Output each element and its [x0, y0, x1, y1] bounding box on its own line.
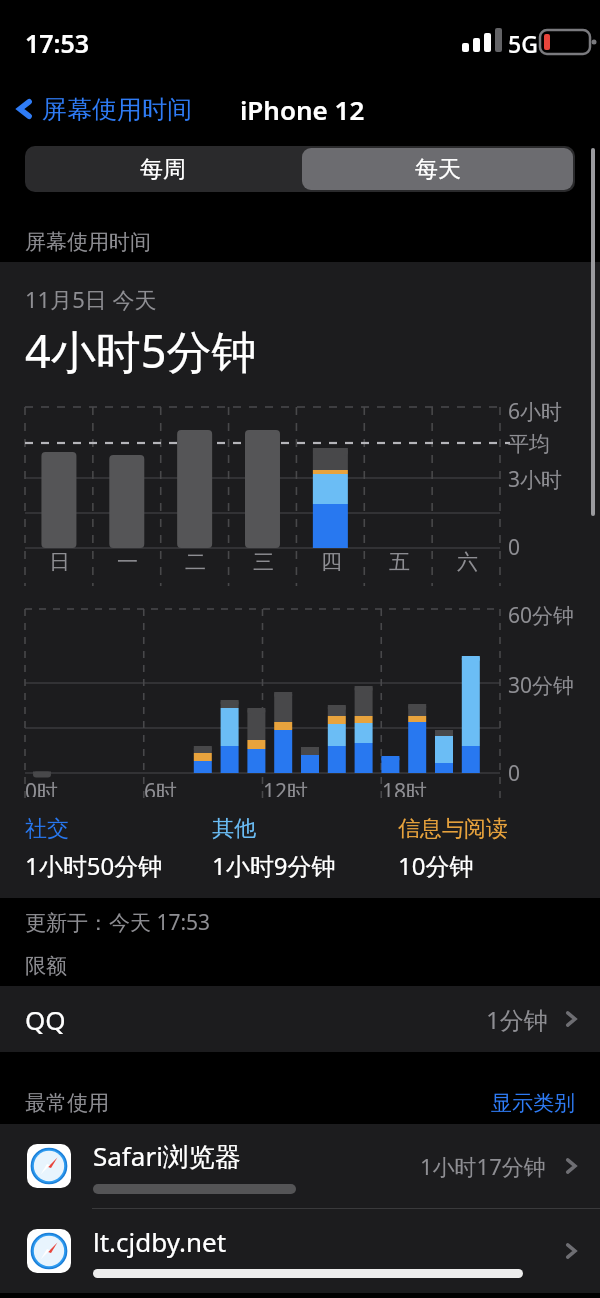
button[interactable]: 信息与阅读: [398, 815, 575, 882]
staticText: 1小时9分钟: [212, 849, 336, 882]
staticText: 更新于：今天 17:53: [25, 908, 211, 937]
button[interactable]: 显示类别: [491, 1090, 575, 1116]
button[interactable]: 每周: [25, 146, 300, 192]
staticText: 11月5日 今天: [25, 284, 157, 314]
staticText: 五: [389, 549, 410, 573]
staticText: 6时: [144, 777, 178, 797]
staticText: 6小时: [508, 397, 563, 426]
other: Safari: [27, 1144, 71, 1188]
button[interactable]: 屏幕使用时间: [0, 78, 200, 140]
staticText: 日: [49, 549, 70, 573]
other: Safari: [27, 1229, 71, 1273]
staticText: 4小时5分钟: [25, 320, 257, 381]
button[interactable]: 每天: [302, 148, 573, 190]
staticText: 1小时50分钟: [25, 849, 163, 882]
button[interactable]: Safari: [0, 1209, 600, 1293]
staticText: QQ: [25, 1002, 66, 1037]
staticText: 10分钟: [398, 849, 474, 882]
other: More: [560, 1240, 582, 1262]
staticText: 三: [253, 549, 274, 573]
staticText: 17:53: [25, 26, 90, 60]
staticText: 平均: [508, 431, 550, 457]
staticText: 其他: [212, 815, 256, 843]
staticText: 3小时: [508, 465, 563, 494]
staticText: lt.cjdby.net: [93, 1224, 227, 1259]
staticText: 30分钟: [508, 671, 575, 700]
staticText: 1分钟: [486, 1003, 548, 1036]
button[interactable]: Safari: [0, 1124, 600, 1208]
staticText: 每周: [140, 155, 186, 184]
staticText: 四: [321, 549, 342, 573]
staticText: 0时: [25, 777, 59, 797]
staticText: 18时: [382, 777, 428, 797]
staticText: 屏幕使用时间: [42, 94, 192, 125]
button[interactable]: 社交: [25, 815, 212, 882]
staticText: 二: [185, 549, 206, 573]
staticText: 信息与阅读: [398, 815, 508, 843]
staticText: 显示类别: [491, 1090, 575, 1116]
staticText: iPhone 12: [240, 92, 365, 127]
button[interactable]: QQ: [0, 986, 600, 1052]
staticText: 0: [508, 533, 521, 562]
staticText: 1小时17分钟: [420, 1151, 546, 1181]
button[interactable]: 其他: [212, 815, 398, 882]
staticText: 0: [508, 759, 521, 788]
staticText: 最常使用: [25, 1090, 109, 1116]
staticText: 12时: [263, 777, 309, 797]
staticText: 限额: [25, 953, 67, 979]
staticText: 5G: [508, 28, 538, 59]
staticText: 一: [117, 549, 138, 573]
staticText: 屏幕使用时间: [25, 229, 151, 255]
staticText: 六: [457, 549, 478, 573]
staticText: Safari浏览器: [93, 1138, 241, 1174]
other: More: [560, 1155, 582, 1177]
other: More: [560, 1008, 582, 1030]
staticText: 60分钟: [508, 601, 575, 630]
staticText: 社交: [25, 815, 69, 843]
staticText: 每天: [415, 155, 461, 184]
